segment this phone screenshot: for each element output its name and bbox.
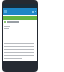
button[interactable]: More options	[34, 10, 37, 13]
button[interactable]: Search	[31, 10, 34, 13]
